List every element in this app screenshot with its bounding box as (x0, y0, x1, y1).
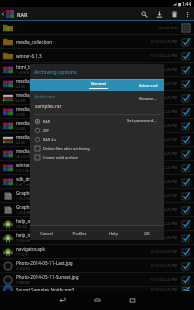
staticText: 5/11/14 2:20 PM (151, 39, 177, 44)
button[interactable]: Select media_collection (180, 36, 191, 47)
button[interactable]: View options (181, 23, 191, 33)
button[interactable]: media_res3.rar (0, 119, 194, 132)
staticText: 5/11/14 2:20 PM (151, 235, 177, 240)
button[interactable]: Delete (167, 7, 182, 21)
button[interactable]: Help (96, 226, 130, 240)
staticText: 5/11/14 2:20 PM (151, 179, 177, 184)
staticText: RAR (43, 119, 51, 124)
staticText: winrar.rar (16, 162, 37, 168)
button[interactable]: Photo-2014-05-11-Last.jpg (0, 259, 194, 272)
button[interactable]: winrar-6.1.3 (0, 49, 194, 62)
button[interactable]: Extract (152, 7, 167, 21)
staticText: media_part1.rar (16, 92, 51, 98)
staticText: 24 KB (16, 98, 26, 103)
button[interactable]: Select Graphic Design.doc (180, 190, 191, 201)
button[interactable]: Select Photo-2014-05-11-Last.jpg (180, 260, 191, 271)
staticText: 5/11/14 2:20 PM (151, 165, 177, 170)
staticText: 4 284 KB (16, 266, 30, 271)
button[interactable]: Select media_res2.rar (180, 106, 191, 117)
button[interactable]: .. (0, 21, 194, 34)
button[interactable]: Create solid archive (35, 153, 78, 162)
button[interactable]: Search (137, 7, 152, 21)
button[interactable]: Browse... (137, 95, 159, 103)
staticText: media_res3.rar (16, 120, 49, 126)
button[interactable]: Select html_backup.rar (180, 64, 191, 75)
button[interactable]: media_collection (0, 35, 194, 48)
staticText: 5/11/14 2:20 PM (151, 109, 177, 114)
button[interactable]: Select media_res3.rar (180, 120, 191, 131)
staticText: 5/11/14 2:20 PM (151, 221, 177, 226)
button[interactable]: Delete files after archiving (35, 144, 90, 153)
button[interactable]: Select winrar.rar (180, 162, 191, 173)
staticText: .. (16, 25, 19, 30)
staticText: Help (109, 231, 118, 236)
button[interactable]: media_pack.rar (0, 147, 194, 160)
staticText: 1,38 MB (16, 70, 29, 75)
button[interactable]: navigator.apk (0, 245, 194, 258)
button[interactable]: winrar.rar (0, 161, 194, 174)
staticText: html_backup.rar (16, 64, 52, 70)
button[interactable]: media_collection.rar (0, 77, 194, 90)
staticText: 1 20 4 KB (16, 210, 31, 215)
button[interactable]: Home (85, 291, 110, 310)
staticText: media_collection (16, 39, 53, 45)
button[interactable]: Select media_part1.rar (180, 92, 191, 103)
staticText: 1 727 B (16, 252, 28, 257)
staticText: Browse... (139, 96, 157, 102)
button[interactable]: Select navigator.apk (180, 246, 191, 257)
button[interactable]: Set password... (125, 117, 159, 125)
staticText: Photo-2014-05-11-Last.jpg (16, 260, 73, 266)
staticText: Sound Samples Notify.mp3 (16, 287, 75, 291)
button[interactable]: Select media_collection.rar (180, 78, 191, 89)
staticText: 5/11/14 2:20 PM (151, 95, 177, 100)
button[interactable]: Graphic Design.doc (0, 189, 194, 202)
button[interactable]: Sound Samples Notify.mp3 (0, 287, 194, 291)
staticText: RAR 4.x (43, 137, 57, 142)
button[interactable]: Select Sound Samples Notify.mp3 (180, 287, 191, 291)
staticText: navigator.apk (16, 246, 46, 252)
button[interactable]: Profiles (63, 226, 96, 240)
button[interactable]: More options (182, 7, 193, 21)
staticText: Create solid archive (43, 155, 78, 160)
staticText: 24 KB (16, 84, 26, 89)
button[interactable]: OK (130, 226, 164, 240)
button[interactable]: Select winrar-6.1.3 (180, 50, 191, 61)
staticText: Up one level (158, 25, 178, 30)
staticText: 5/11/14 2:20 PM (151, 81, 177, 86)
button[interactable]: Graphic Doc.doc (0, 203, 194, 216)
button[interactable]: Select Graphic Doc.doc (180, 204, 191, 215)
staticText: 5/11/14 2:20 PM (151, 263, 177, 268)
button[interactable]: Recents (120, 291, 145, 310)
staticText: 5/11/14 2:20 PM (151, 53, 177, 58)
staticText: RAR (17, 11, 28, 18)
button[interactable]: Back (50, 291, 75, 310)
staticText: OK (144, 231, 150, 236)
button[interactable]: Select sdk_drive.rar (180, 176, 191, 187)
staticText: 38 245 KB (16, 154, 32, 159)
button[interactable]: Photo-2014-05-11-Sunset.jpg (0, 273, 194, 286)
button[interactable]: media_res4.rar (0, 133, 194, 146)
button[interactable]: media_part1.rar (0, 91, 194, 104)
staticText: Graphic Doc.doc (16, 204, 52, 210)
staticText: 6 of 1 mb (16, 182, 31, 187)
button[interactable]: Select media_pack.rar (180, 148, 191, 159)
button[interactable]: General (65, 79, 132, 91)
button[interactable]: Cancel (30, 226, 63, 240)
button[interactable]: RAR (35, 117, 51, 126)
button[interactable]: help_archiver.apk (0, 217, 194, 230)
button[interactable]: Select help_archiver.apk (180, 218, 191, 229)
button[interactable]: RAR 4.x (35, 135, 57, 144)
button[interactable]: Select media_res4.rar (180, 134, 191, 145)
button[interactable]: Select help_internal.apk (180, 232, 191, 243)
staticText: Cancel (40, 231, 53, 236)
button[interactable]: media_res2.rar (0, 105, 194, 118)
button[interactable]: Advanced (132, 79, 164, 91)
button[interactable]: Select Photo-2014-05-11-Sunset.jpg (180, 274, 191, 285)
staticText: 206 KB (16, 224, 28, 229)
button[interactable]: html_backup.rar (0, 63, 194, 76)
staticText: Photo-2014-05-11-Sunset.jpg (16, 274, 79, 280)
button[interactable]: help_internal.apk (0, 231, 194, 244)
button[interactable]: Navigate up (0, 7, 6, 21)
button[interactable]: sdk_drive.rar (0, 175, 194, 188)
button[interactable]: ZIP (35, 126, 49, 135)
